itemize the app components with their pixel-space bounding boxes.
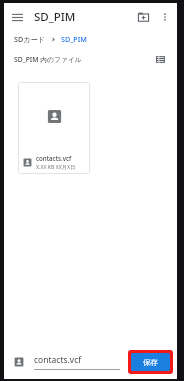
staticText: contacts.vcf	[36, 154, 72, 162]
button[interactable]: More options	[155, 7, 175, 27]
staticText: contacts.vcf	[34, 354, 82, 366]
staticText: SD_PIM 内のファイル	[14, 55, 82, 64]
button[interactable]: 保存	[131, 353, 170, 371]
button[interactable]: Switch view	[151, 50, 169, 68]
button[interactable]: contacts.vcf	[18, 82, 90, 174]
button[interactable]: SDカード	[14, 34, 46, 44]
staticText: SD_PIM	[34, 9, 76, 25]
button[interactable]: Menu	[4, 4, 30, 30]
staticText: SDカード	[14, 34, 46, 44]
button[interactable]: Create new folder	[131, 5, 155, 29]
button[interactable]: SD_PIM	[61, 34, 87, 44]
staticText: SD_PIM	[61, 34, 87, 44]
staticText: 保存	[143, 358, 158, 367]
staticText: X.XX KB XX月X日	[36, 163, 76, 170]
